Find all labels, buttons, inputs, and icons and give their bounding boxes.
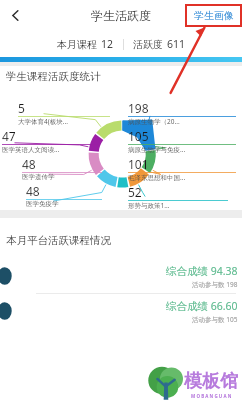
button[interactable]: 综合成绩 66.60: [0, 294, 242, 328]
staticText: 病原生物学与免疫...: [128, 145, 236, 154]
button[interactable]: 学生画像: [185, 4, 242, 27]
staticText: 综合成绩 94.38: [166, 264, 238, 278]
staticText: 12: [101, 37, 114, 51]
staticText: 学生活跃度: [91, 8, 151, 23]
staticText: 病原生物学（20...: [128, 117, 236, 126]
staticText: 198: [128, 100, 149, 116]
staticText: 101: [128, 156, 149, 172]
staticText: 医学英语人文阅读...: [2, 145, 100, 154]
staticText: 形势与政策1...: [128, 201, 228, 210]
staticText: 活动参与数 198: [192, 280, 238, 289]
staticText: 5: [18, 100, 25, 116]
staticText: 模板馆: [184, 370, 238, 393]
staticText: 52: [128, 184, 142, 200]
staticText: 毛泽东思想和中国...: [128, 173, 236, 182]
staticText: 105: [128, 128, 149, 144]
staticText: 活跃度: [133, 38, 163, 51]
staticText: 医学遗传学: [22, 173, 102, 181]
button[interactable]: 综合成绩 94.38: [0, 259, 242, 293]
staticText: 611: [167, 37, 186, 51]
staticText: 综合成绩 66.60: [166, 299, 238, 313]
staticText: 本月平台活跃课程情况: [6, 234, 111, 247]
staticText: 大学体育4(板块...: [18, 117, 110, 126]
staticText: 47: [2, 128, 16, 144]
staticText: M O B A N G U A N: [191, 393, 232, 399]
staticText: 学生画像: [194, 9, 234, 22]
staticText: 48: [22, 156, 36, 172]
staticText: 48: [26, 183, 40, 199]
staticText: 活动参与数 105: [192, 315, 238, 324]
staticText: 本月课程: [57, 38, 97, 51]
button[interactable]: Back: [0, 0, 30, 30]
staticText: 学生课程活跃度统计: [6, 70, 101, 83]
staticText: 医学免疫学: [26, 200, 102, 208]
